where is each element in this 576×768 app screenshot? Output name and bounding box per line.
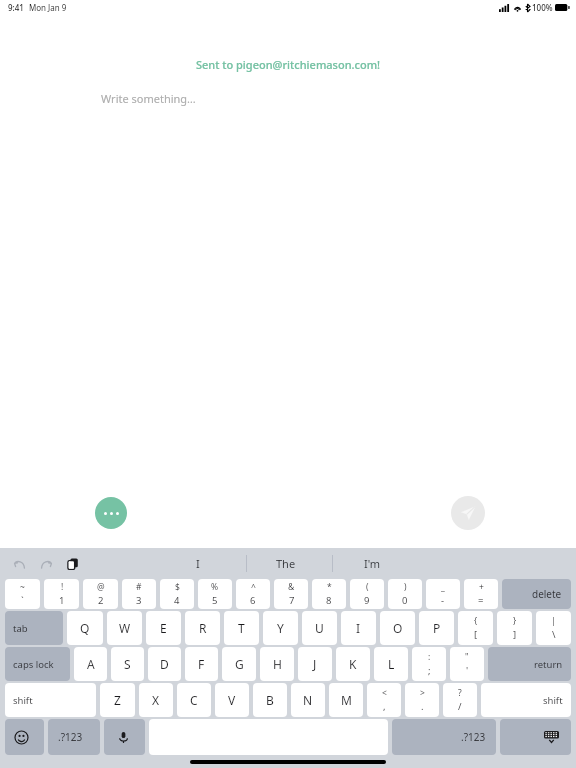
staticText: @	[97, 581, 105, 593]
button[interactable]: M	[329, 683, 363, 717]
button[interactable]: >	[405, 683, 439, 717]
staticText: ?	[458, 687, 462, 699]
staticText: G	[235, 656, 244, 672]
button[interactable]: K	[336, 647, 370, 681]
staticText: delete	[532, 587, 562, 601]
button[interactable]: T	[224, 611, 259, 645]
button[interactable]: )	[388, 579, 422, 609]
button[interactable]: +	[464, 579, 498, 609]
button[interactable]: F	[185, 647, 218, 681]
button[interactable]: ^	[236, 579, 270, 609]
staticText: (	[366, 581, 369, 593]
button[interactable]: D	[148, 647, 181, 681]
button[interactable]: L	[374, 647, 408, 681]
button[interactable]: C	[177, 683, 211, 717]
button[interactable]: Dictation	[104, 719, 145, 755]
staticText: The	[276, 556, 296, 571]
button[interactable]: $	[160, 579, 194, 609]
button[interactable]: Send	[451, 496, 485, 530]
staticText: S	[124, 656, 131, 672]
button[interactable]: Q	[67, 611, 103, 645]
button[interactable]: caps lock	[5, 647, 70, 681]
staticText: B	[266, 692, 274, 708]
staticText: %	[211, 581, 219, 593]
staticText: Sent to pigeon@ritchiemason.com!	[0, 57, 576, 72]
button[interactable]: "	[450, 647, 484, 681]
button[interactable]: B	[253, 683, 287, 717]
button[interactable]: E	[146, 611, 181, 645]
staticText: W	[119, 620, 131, 636]
button[interactable]: More options	[95, 497, 127, 529]
staticText: 1	[59, 594, 65, 607]
button[interactable]: Paste	[66, 557, 80, 571]
button[interactable]: !	[44, 579, 79, 609]
staticText: =	[478, 594, 484, 607]
staticText: .?123	[58, 730, 83, 744]
button[interactable]: tab	[5, 611, 63, 645]
button[interactable]: N	[291, 683, 325, 717]
button[interactable]: G	[222, 647, 256, 681]
staticText: caps lock	[13, 658, 54, 671]
staticText: A	[87, 656, 95, 672]
button[interactable]: ?	[443, 683, 477, 717]
staticText: U	[315, 620, 324, 636]
button[interactable]: |	[536, 611, 571, 645]
button[interactable]: J	[298, 647, 332, 681]
staticText: K	[349, 656, 357, 672]
staticText: "	[465, 651, 469, 663]
staticText: !	[61, 581, 64, 593]
staticText: ^	[251, 581, 256, 593]
staticText: 2	[98, 594, 104, 607]
button[interactable]: A	[74, 647, 107, 681]
staticText: -	[441, 594, 445, 607]
button[interactable]: U	[302, 611, 337, 645]
button[interactable]: .?123	[48, 719, 100, 755]
other: Hide keyboard	[500, 719, 571, 755]
button[interactable]: Undo	[12, 557, 26, 571]
button[interactable]: delete	[502, 579, 571, 609]
button[interactable]: I	[341, 611, 376, 645]
button[interactable]: _	[426, 579, 460, 609]
button[interactable]: O	[380, 611, 415, 645]
staticText: .	[421, 700, 424, 713]
button[interactable]: {	[458, 611, 493, 645]
button[interactable]: S	[111, 647, 144, 681]
button[interactable]: shift	[5, 683, 96, 717]
button[interactable]: Z	[100, 683, 135, 717]
staticText: <	[382, 687, 387, 699]
staticText: Q	[80, 620, 90, 636]
button[interactable]: Emoji	[5, 719, 44, 755]
button[interactable]: Hide keyboard	[500, 719, 571, 755]
button[interactable]: :	[412, 647, 446, 681]
button[interactable]: V	[215, 683, 249, 717]
button[interactable]: ~	[5, 579, 40, 609]
button[interactable]: #	[122, 579, 156, 609]
button[interactable]: }	[497, 611, 532, 645]
button[interactable]: W	[107, 611, 142, 645]
button[interactable]: Y	[263, 611, 298, 645]
button[interactable]: <	[367, 683, 401, 717]
button[interactable]: (	[350, 579, 384, 609]
button[interactable]: &	[274, 579, 308, 609]
button[interactable]: *	[312, 579, 346, 609]
button[interactable]: H	[260, 647, 294, 681]
staticText: [	[474, 628, 478, 641]
button[interactable]: X	[139, 683, 173, 717]
button[interactable]: .?123	[392, 719, 496, 755]
button[interactable]: R	[185, 611, 220, 645]
staticText: N	[303, 692, 313, 708]
staticText: V	[228, 692, 236, 708]
button[interactable]: shift	[481, 683, 571, 717]
staticText: 7	[289, 594, 295, 607]
button[interactable]: P	[419, 611, 454, 645]
button[interactable]: Redo	[39, 557, 53, 571]
staticText: T	[238, 620, 245, 636]
staticText: 4	[174, 594, 180, 607]
staticText: P	[433, 620, 441, 636]
button[interactable]: %	[198, 579, 232, 609]
button[interactable]: @	[83, 579, 118, 609]
staticText: shift	[13, 694, 33, 707]
button[interactable]: return	[488, 647, 571, 681]
staticText: 3	[136, 594, 142, 607]
